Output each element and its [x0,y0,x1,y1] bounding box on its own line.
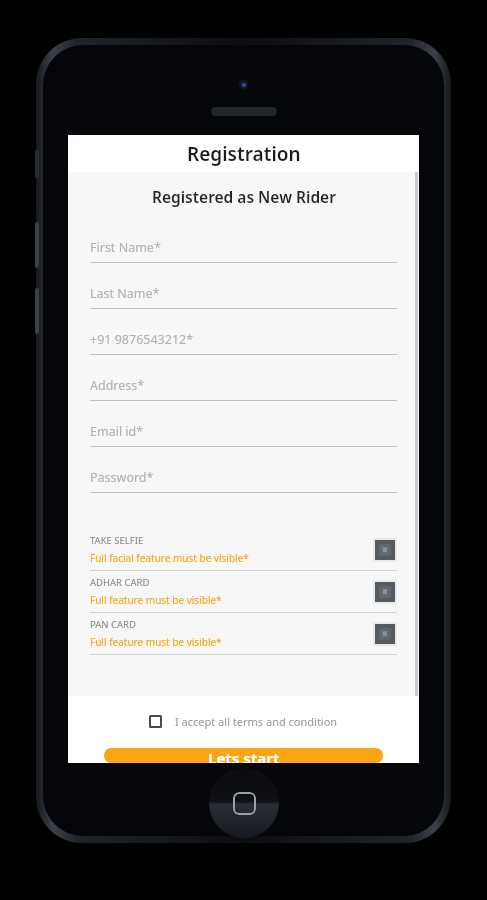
staticText: Registration [187,141,301,167]
other: Upload TAKE SELFIE [375,540,395,560]
button[interactable]: I accept all terms and condition [145,711,342,732]
staticText: Email id* [90,423,144,440]
staticText: TAKE SELFIE [90,534,144,547]
button[interactable]: First Name* [68,233,419,279]
staticText: PAN CARD [90,618,136,631]
staticText: Full feature must be visible* [90,593,222,607]
staticText: ADHAR CARD [90,576,150,589]
staticText: I accept all terms and condition [175,714,338,729]
button[interactable]: TAKE SELFIE [68,529,419,570]
staticText: Address* [90,377,145,394]
button[interactable]: Address* [68,371,419,417]
button[interactable]: +91 9876543212* [68,325,419,371]
staticText: Registered as New Rider [152,186,336,207]
other: Upload ADHAR CARD [375,582,395,602]
button[interactable]: Password* [68,463,419,509]
staticText: Full feature must be visible* [90,635,222,649]
staticText: Password* [90,469,154,486]
button[interactable]: Lets start [104,748,383,763]
button[interactable]: Last Name* [68,279,419,325]
staticText: +91 9876543212* [90,331,194,348]
staticText: Full facial feature must be visible* [90,551,249,565]
staticText: Lets start [208,748,280,763]
staticText: Last Name* [90,285,160,302]
other: Upload PAN CARD [375,624,395,644]
button[interactable]: ADHAR CARD [68,571,419,612]
button[interactable]: Email id* [68,417,419,463]
other: Home [209,768,279,838]
button[interactable]: PAN CARD [68,613,419,654]
staticText: First Name* [90,239,161,256]
